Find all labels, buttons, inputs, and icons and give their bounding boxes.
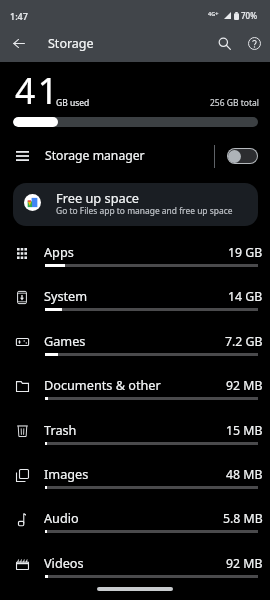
button[interactable]: Help: [236, 25, 270, 62]
staticText: 5.8 MB: [223, 510, 263, 527]
staticText: Storage: [48, 35, 94, 52]
staticText: 92 MB: [226, 377, 263, 394]
staticText: Audio: [44, 509, 79, 526]
staticText: 15 MB: [226, 422, 263, 439]
staticText: Games: [44, 332, 86, 349]
button[interactable]: System: [0, 284, 270, 324]
staticText: Free up space: [56, 189, 140, 206]
staticText: 41: [15, 66, 61, 114]
staticText: Trash: [44, 421, 77, 438]
staticText: 92 MB: [226, 555, 263, 572]
button[interactable]: Audio: [0, 506, 270, 546]
button[interactable]: Trash: [0, 418, 270, 458]
staticText: 4G+: [208, 10, 219, 17]
staticText: Storage manager: [45, 147, 145, 164]
staticText: System: [44, 287, 88, 304]
staticText: Apps: [44, 243, 74, 260]
button[interactable]: Images: [0, 462, 270, 502]
staticText: 256 GB total: [210, 97, 259, 109]
button[interactable]: Videos: [0, 551, 270, 591]
staticText: 1:47: [10, 10, 28, 22]
button[interactable]: Storage manager toggle: [222, 140, 264, 172]
button[interactable]: Documents & other: [0, 373, 270, 413]
button[interactable]: Games: [0, 329, 270, 369]
staticText: 7.2 GB: [225, 333, 263, 350]
staticText: 70%: [241, 10, 257, 21]
button[interactable]: Storage manager: [0, 138, 270, 174]
staticText: 48 MB: [226, 466, 263, 483]
staticText: 14 GB: [228, 288, 263, 305]
staticText: GB used: [56, 97, 90, 109]
button[interactable]: Apps: [0, 240, 270, 280]
staticText: Videos: [44, 554, 84, 571]
staticText: 19 GB: [228, 244, 263, 261]
button[interactable]: Search: [206, 25, 243, 62]
staticText: Images: [44, 465, 89, 482]
staticText: Go to Files app to manage and free up sp…: [56, 205, 233, 217]
staticText: Documents & other: [44, 376, 161, 393]
button[interactable]: Back: [0, 24, 37, 61]
button[interactable]: Free up space: [13, 183, 258, 226]
